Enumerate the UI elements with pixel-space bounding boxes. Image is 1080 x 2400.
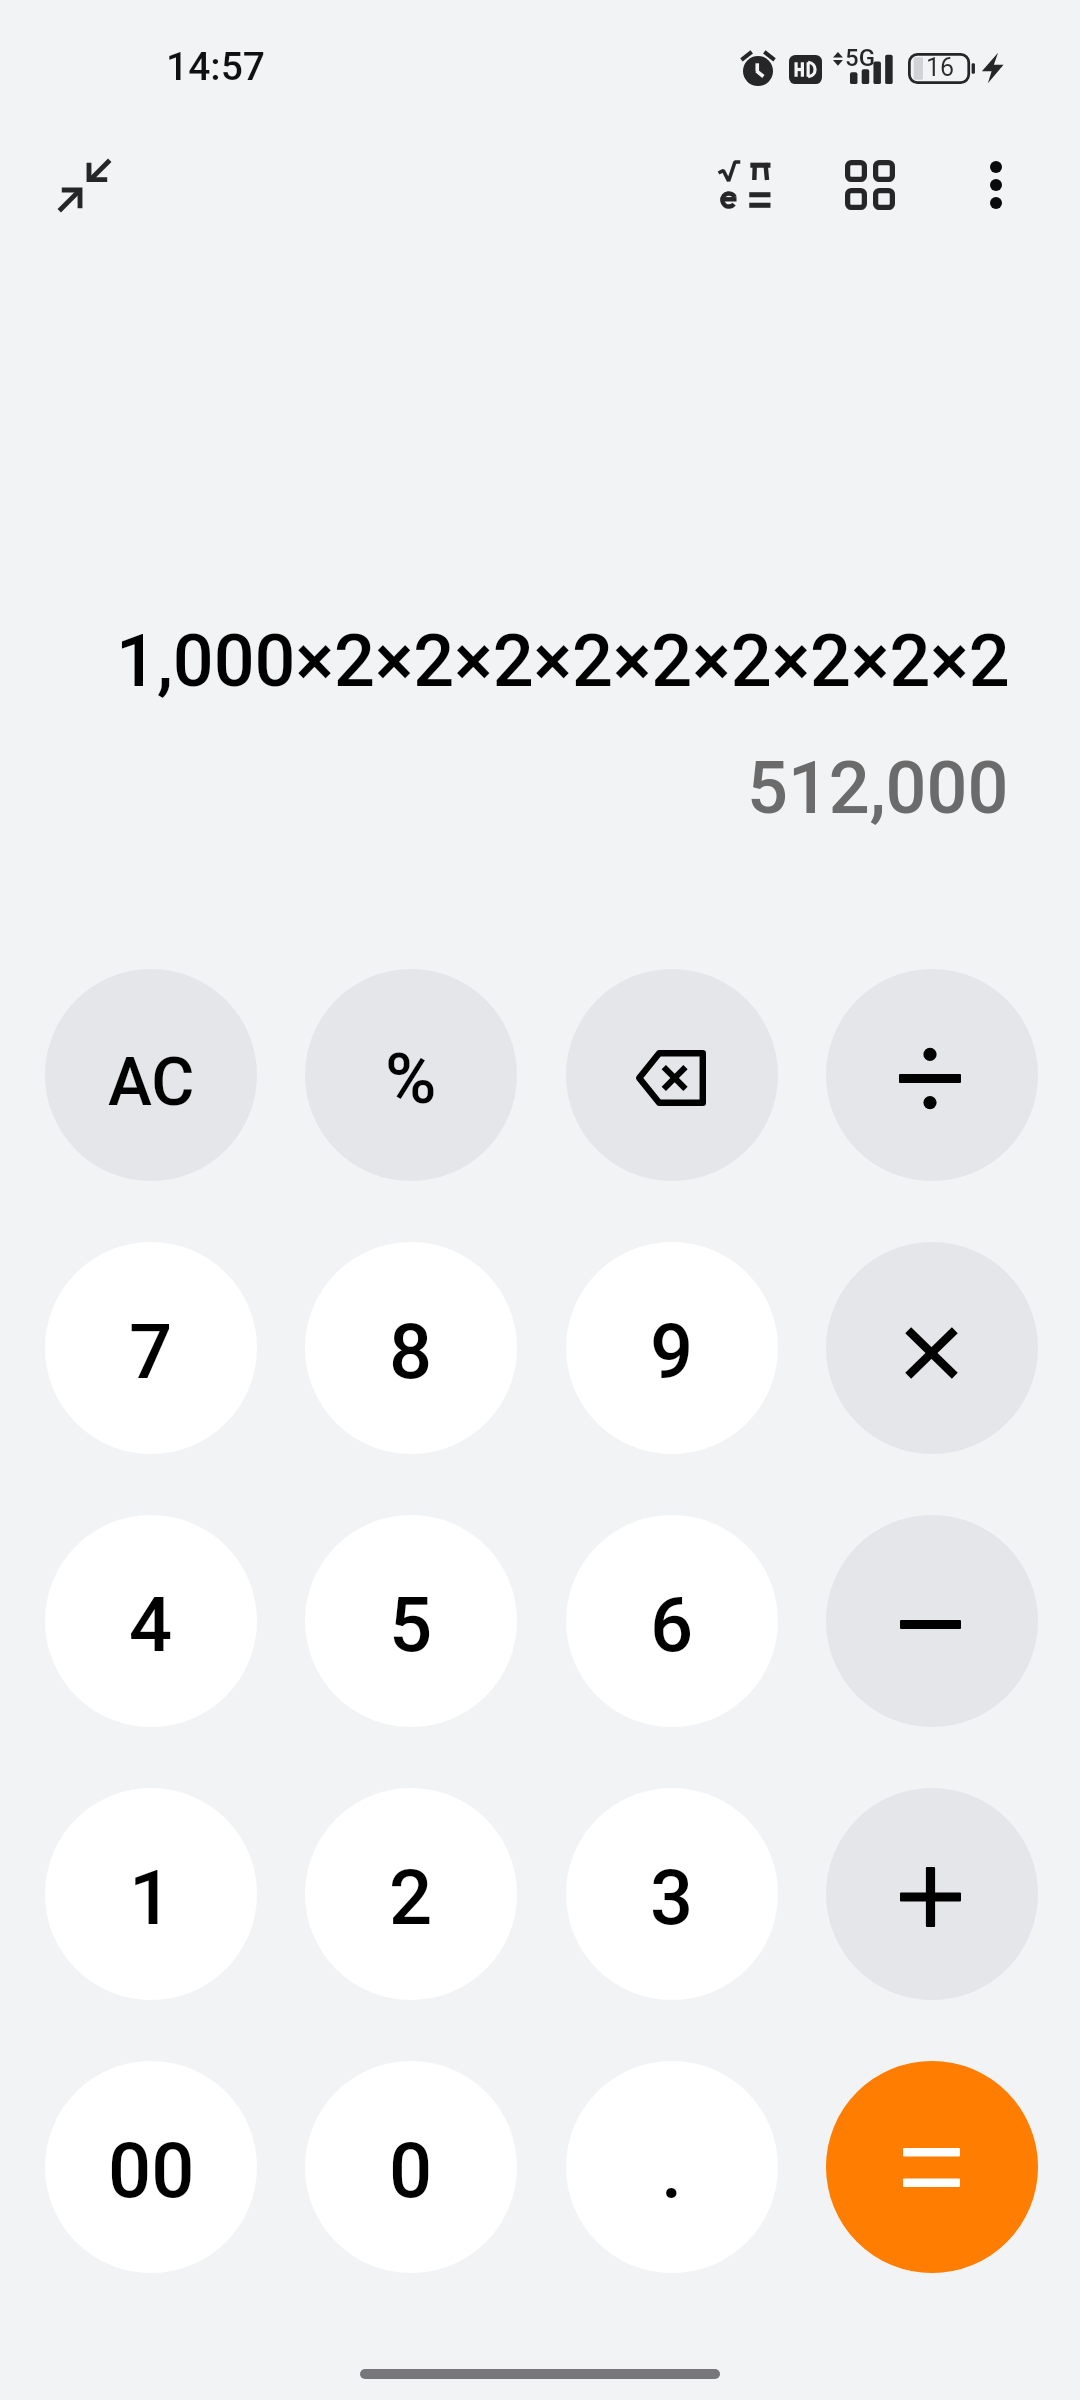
staticText: 0 xyxy=(389,2126,433,2215)
staticText: 7 xyxy=(129,1307,173,1396)
staticText: 1 xyxy=(129,1853,173,1942)
staticText: 3 xyxy=(650,1853,694,1942)
staticText: 5G xyxy=(845,44,875,72)
staticText: 4 xyxy=(129,1580,173,1669)
button[interactable]: Multiply xyxy=(826,1242,1038,1454)
button[interactable]: 0 xyxy=(305,2061,517,2273)
button[interactable]: 3 xyxy=(566,1788,778,2000)
button[interactable]: Subtract xyxy=(826,1515,1038,1727)
staticText: 9 xyxy=(650,1307,694,1396)
button[interactable]: % xyxy=(305,969,517,1181)
staticText: . xyxy=(661,2126,683,2215)
button[interactable]: Backspace xyxy=(566,969,778,1181)
button[interactable]: Equals xyxy=(826,2061,1038,2273)
button[interactable]: Unit converter xyxy=(820,135,920,235)
staticText: 512,000 xyxy=(747,746,1009,830)
staticText: 5 xyxy=(389,1580,433,1669)
staticText: 2 xyxy=(389,1853,433,1942)
staticText: 00 xyxy=(108,2126,195,2215)
staticText: 6 xyxy=(650,1580,694,1669)
button[interactable]: 8 xyxy=(305,1242,517,1454)
button[interactable]: Divide xyxy=(826,969,1038,1181)
button[interactable]: More options xyxy=(946,135,1046,235)
staticText: 8 xyxy=(389,1307,433,1396)
staticText: 1,000×2×2×2×2×2×2×2×2×2 xyxy=(116,619,1010,703)
button[interactable]: 1 xyxy=(45,1788,257,2000)
button[interactable]: Collapse xyxy=(34,135,134,235)
button[interactable]: . xyxy=(566,2061,778,2273)
button[interactable]: 00 xyxy=(45,2061,257,2273)
button[interactable]: 6 xyxy=(566,1515,778,1727)
staticText: AC xyxy=(108,1044,195,1121)
button[interactable]: 9 xyxy=(566,1242,778,1454)
staticText: 14:57 xyxy=(166,44,266,90)
button[interactable]: AC xyxy=(45,969,257,1181)
button[interactable]: 4 xyxy=(45,1515,257,1727)
button[interactable]: Add xyxy=(826,1788,1038,2000)
staticText: % xyxy=(385,1038,437,1120)
button[interactable]: 5 xyxy=(305,1515,517,1727)
button[interactable]: 7 xyxy=(45,1242,257,1454)
staticText: 16 xyxy=(926,53,955,82)
button[interactable]: 2 xyxy=(305,1788,517,2000)
button[interactable]: Scientific mode xyxy=(694,135,794,235)
